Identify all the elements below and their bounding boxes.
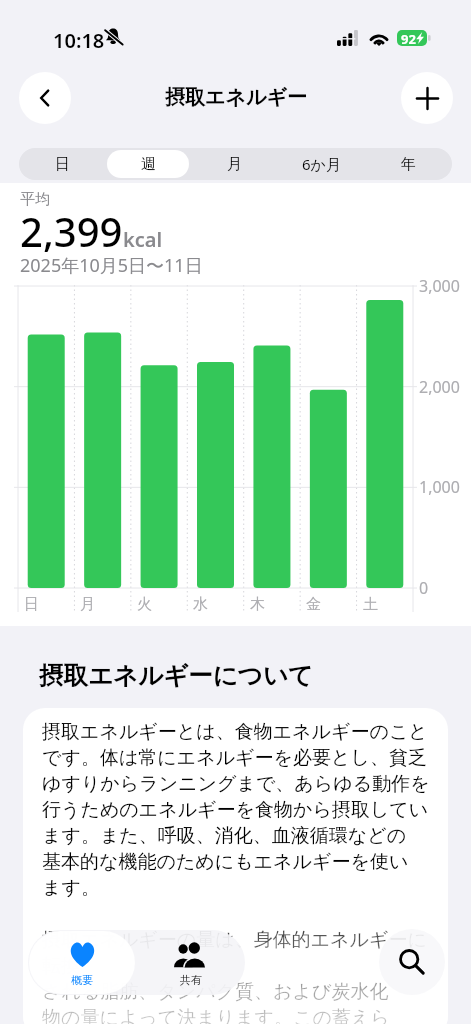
staticText: 年 (401, 155, 416, 174)
staticText: 概要 (71, 973, 93, 987)
button[interactable]: 週 (107, 150, 189, 178)
staticText: 摂取エネルギー (165, 85, 307, 110)
staticText: 共有 (180, 973, 202, 987)
button[interactable]: 日 (21, 150, 103, 178)
staticText: 日 (24, 595, 39, 614)
button[interactable]: 共有 (136, 930, 245, 995)
staticText: kcal (123, 226, 163, 253)
staticText: 0 (419, 577, 429, 599)
button[interactable]: 概要 (28, 930, 136, 995)
staticText: 火 (137, 595, 152, 614)
button[interactable]: Add (401, 72, 453, 124)
staticText: 土 (363, 595, 378, 614)
staticText: 2,000 (419, 376, 460, 398)
button[interactable]: 月 (193, 150, 276, 178)
staticText: 92 (401, 30, 416, 46)
button[interactable]: Search (379, 929, 445, 995)
button[interactable]: Back (19, 72, 71, 124)
staticText: 水 (193, 595, 208, 614)
staticText: 木 (250, 595, 265, 614)
staticText: 3,000 (419, 275, 460, 297)
staticText: 月 (227, 155, 242, 174)
staticText: 日 (55, 155, 70, 174)
button[interactable]: 年 (367, 150, 450, 178)
button[interactable]: 6か月 (280, 150, 363, 178)
staticText: 2,399 (20, 204, 123, 258)
staticText: 2025年10月5日〜11日 (20, 253, 203, 278)
staticText: 平均 (20, 190, 50, 209)
staticText: 6か月 (302, 154, 341, 174)
staticText: 摂取エネルギーについて (39, 660, 314, 691)
staticText: 1,000 (419, 476, 460, 498)
staticText: 月 (80, 595, 95, 614)
staticText: 週 (141, 155, 156, 174)
staticText: 摂取エネルギーとは、食物エネルギーのこと です。体は常にエネルギーを必要とし、貧… (42, 720, 440, 1024)
staticText: 金 (306, 595, 321, 614)
staticText: 10:18 (53, 27, 105, 54)
